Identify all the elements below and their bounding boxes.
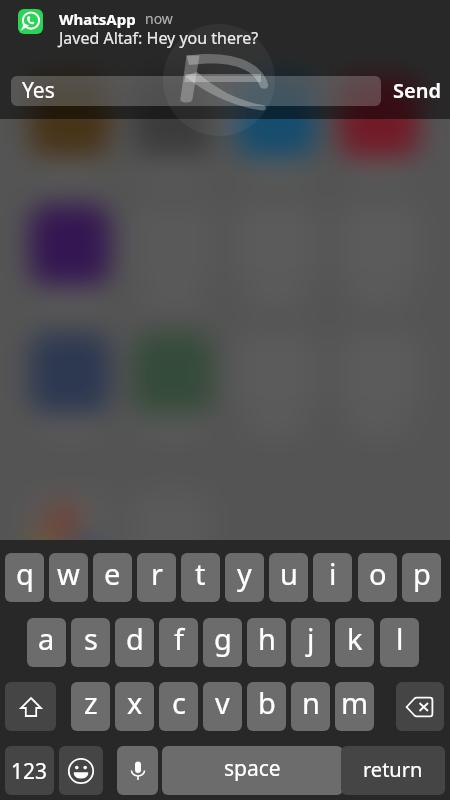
button[interactable]: j	[291, 618, 330, 667]
button[interactable]: c	[159, 682, 198, 731]
button[interactable]: y	[225, 553, 264, 602]
staticText: space	[224, 754, 281, 783]
button[interactable]: l	[380, 618, 419, 667]
button[interactable]: Backspace	[396, 682, 444, 731]
button[interactable]: n	[291, 682, 330, 731]
staticText: v	[215, 683, 230, 722]
staticText: return	[363, 756, 423, 783]
staticText: f	[174, 619, 184, 658]
button[interactable]: b	[247, 682, 286, 731]
button[interactable]: Send	[385, 76, 448, 106]
button[interactable]: Yes	[11, 76, 381, 106]
staticText: WhatsApp	[59, 9, 136, 29]
staticText: u	[280, 554, 298, 593]
staticText: c	[172, 683, 186, 722]
button[interactable]: Dictation	[117, 746, 158, 795]
staticText: q	[16, 554, 34, 593]
button[interactable]: h	[247, 618, 286, 667]
staticText: o	[369, 554, 387, 593]
staticText: now	[145, 9, 173, 28]
button[interactable]: 123	[5, 746, 54, 795]
button[interactable]: e	[93, 553, 132, 602]
button[interactable]: m	[335, 682, 374, 731]
button[interactable]: f	[159, 618, 198, 667]
staticText: j	[307, 619, 315, 658]
staticText: p	[413, 554, 431, 593]
button[interactable]: a	[27, 618, 66, 667]
button[interactable]: p	[402, 553, 441, 602]
button[interactable]: x	[115, 682, 154, 731]
staticText: r	[151, 554, 163, 593]
button[interactable]: t	[181, 553, 220, 602]
button[interactable]: k	[335, 618, 374, 667]
button[interactable]: v	[203, 682, 242, 731]
button[interactable]: space	[162, 746, 343, 795]
staticText: w	[57, 554, 80, 593]
button[interactable]: Emoji	[59, 746, 103, 795]
staticText: x	[127, 683, 143, 722]
staticText: Yes	[22, 76, 55, 105]
button[interactable]: g	[203, 618, 242, 667]
staticText: a	[38, 619, 55, 658]
staticText: i	[329, 554, 337, 593]
button[interactable]: w	[49, 553, 88, 602]
button[interactable]: d	[115, 618, 154, 667]
button[interactable]: r	[137, 553, 176, 602]
staticText: t	[195, 554, 206, 593]
staticText: d	[126, 619, 144, 658]
staticText: e	[104, 554, 121, 593]
button[interactable]: o	[358, 553, 397, 602]
staticText: h	[258, 619, 276, 658]
staticText: b	[258, 683, 276, 722]
button[interactable]: q	[5, 553, 44, 602]
button[interactable]: u	[269, 553, 308, 602]
staticText: s	[84, 619, 98, 658]
staticText: m	[341, 683, 369, 722]
staticText: z	[84, 683, 98, 722]
staticText: Javed Altaf: Hey you there?	[59, 27, 259, 49]
staticText: 123	[11, 757, 48, 786]
button[interactable]: z	[71, 682, 110, 731]
staticText: k	[347, 619, 363, 658]
button[interactable]: return	[341, 746, 445, 795]
button[interactable]: WhatsApp	[0, 0, 450, 62]
staticText: n	[302, 683, 320, 722]
button[interactable]: s	[71, 618, 110, 667]
button[interactable]: i	[313, 553, 352, 602]
staticText: y	[237, 554, 252, 593]
staticText: g	[214, 619, 232, 658]
staticText: l	[396, 619, 404, 658]
button[interactable]: Shift	[5, 682, 56, 731]
staticText: Send	[393, 77, 441, 104]
